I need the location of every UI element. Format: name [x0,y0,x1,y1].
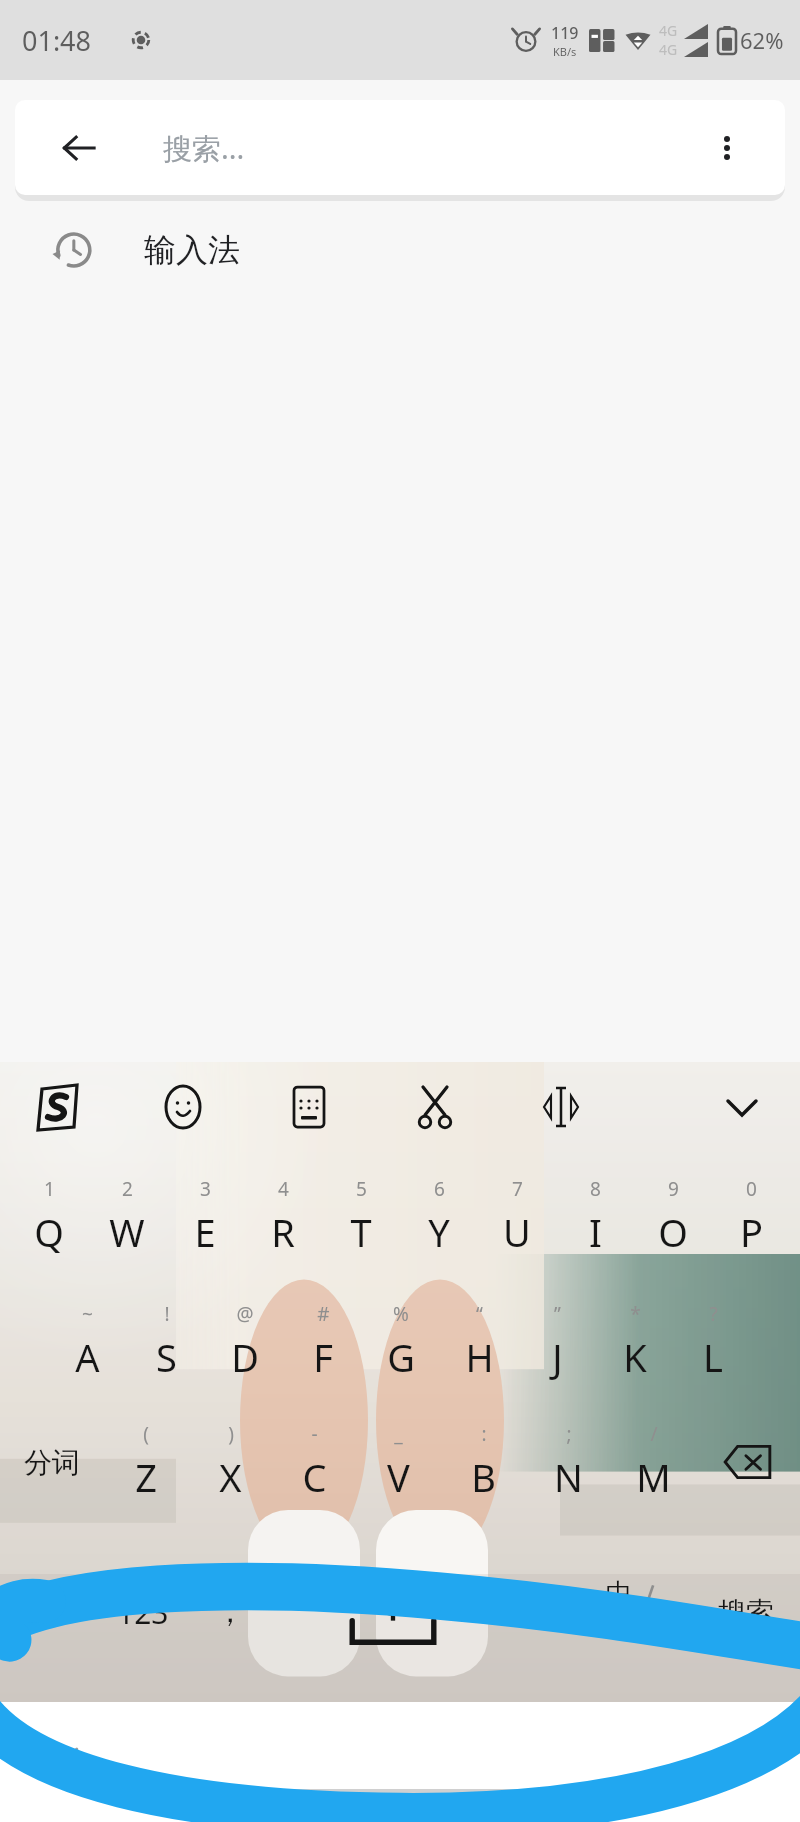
staticText: P [740,1206,763,1258]
button[interactable]: @ [206,1282,284,1402]
staticText: E [194,1206,216,1258]
staticText: B [471,1451,496,1503]
button[interactable]: 9 [634,1152,712,1282]
button[interactable]: 123 [95,1522,190,1702]
staticText: @ [236,1301,254,1327]
button[interactable]: Back [49,118,109,178]
button[interactable]: More options [699,120,755,176]
staticText: 4G [659,40,678,59]
button[interactable]: Space [270,1522,516,1702]
staticText: T [350,1206,372,1258]
staticText: 01:48 [22,22,92,59]
staticText: 4 [278,1176,289,1202]
staticText: F [313,1331,333,1383]
staticText: 搜索 [718,1595,774,1630]
staticText: O [658,1206,688,1258]
staticText: V [387,1451,410,1503]
button[interactable]: / [611,1402,696,1522]
staticText: R [271,1206,295,1258]
button[interactable]: : [441,1402,526,1522]
button[interactable]: Sogou logo [26,1075,90,1139]
staticText: 搜索... [163,128,245,168]
staticText: # [317,1301,330,1327]
staticText: KB/s [553,44,577,59]
button[interactable]: ” [518,1282,596,1402]
button[interactable]: 分词 [0,1402,104,1522]
button[interactable]: “ [440,1282,518,1402]
staticText: Y [428,1206,450,1258]
staticText: 1 [44,1176,55,1202]
button[interactable]: Switch input method [710,1722,774,1786]
button[interactable]: Backspace [696,1402,800,1522]
staticText: ! [164,1301,170,1327]
button[interactable]: Emoji [151,1075,215,1139]
staticText: ; [566,1421,572,1447]
button[interactable]: ， [190,1522,270,1702]
button[interactable]: % [362,1282,440,1402]
button[interactable]: 符 [0,1522,95,1702]
button[interactable]: 8 [556,1152,634,1282]
staticText: 119 [551,22,579,44]
button[interactable]: 5 [322,1152,400,1282]
button[interactable]: ( [104,1402,188,1522]
staticText: “ [476,1301,483,1327]
button[interactable]: 搜索 [691,1522,800,1702]
staticText: S [156,1331,177,1383]
button[interactable]: 4 [244,1152,322,1282]
staticText: 输入法 [144,230,240,270]
staticText: 4G [659,21,678,40]
button[interactable]: 3 [166,1152,244,1282]
staticText: Z [135,1451,157,1503]
staticText: 6 [434,1176,445,1202]
button[interactable]: Hide keyboard [32,1722,96,1786]
staticText: 中 [606,1577,632,1610]
staticText: - [311,1421,318,1447]
staticText: Q [34,1206,64,1258]
staticText: ” [554,1301,561,1327]
staticText: 3 [200,1176,211,1202]
button[interactable]: 输入法 [0,195,800,305]
staticText: % [393,1301,409,1327]
button[interactable]: 7 [478,1152,556,1282]
button[interactable]: 6 [400,1152,478,1282]
button[interactable]: # [284,1282,362,1402]
button[interactable]: * [596,1282,674,1402]
staticText: ) [228,1421,234,1447]
staticText: K [623,1331,647,1383]
staticText: 123 [117,1592,169,1633]
staticText: A [75,1331,100,1383]
staticText: L [703,1331,723,1383]
staticText: D [231,1331,259,1383]
button[interactable]: - [272,1402,356,1522]
button[interactable]: Collapse keyboard [710,1075,774,1139]
staticText: I [589,1206,602,1258]
button[interactable]: Move cursor [529,1075,593,1139]
button[interactable]: _ [356,1402,441,1522]
button[interactable]: 2 [88,1152,166,1282]
staticText: ， [215,1593,245,1631]
staticText: C [302,1451,327,1503]
staticText: * [630,1301,641,1327]
button[interactable]: ; [526,1402,611,1522]
button[interactable]: ~ [48,1282,127,1402]
button[interactable]: ? [674,1282,752,1402]
button[interactable]: 1 [10,1152,88,1282]
staticText: 62% [740,25,784,55]
staticText: 符 [33,1593,63,1631]
button[interactable]: 。 [516,1522,596,1702]
staticText: 5 [356,1176,367,1202]
staticText: 分词 [24,1445,80,1480]
button[interactable]: 0 [712,1152,790,1282]
button[interactable]: 中 [596,1522,691,1702]
staticText: ? [709,1301,718,1327]
staticText: ( [143,1421,149,1447]
staticText: W [109,1206,145,1258]
button[interactable]: Clipboard cut [403,1075,467,1139]
button[interactable]: ! [127,1282,206,1402]
staticText: _ [394,1421,403,1447]
staticText: U [503,1206,531,1258]
button[interactable]: ) [188,1402,272,1522]
button[interactable]: Keyboard layout [277,1075,341,1139]
staticText: J [552,1331,563,1383]
